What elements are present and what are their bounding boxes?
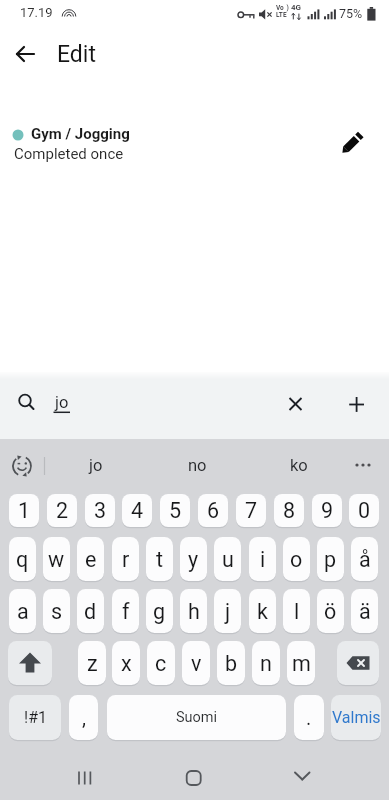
- button[interactable]: x: [112, 641, 140, 685]
- button[interactable]: .: [294, 695, 324, 740]
- button[interactable]: ko: [259, 439, 339, 491]
- button[interactable]: w: [43, 537, 70, 581]
- button[interactable]: m: [287, 641, 315, 685]
- staticText: w: [48, 547, 65, 572]
- button[interactable]: u: [214, 537, 241, 581]
- button[interactable]: 5: [160, 494, 190, 527]
- staticText: jo: [55, 393, 69, 412]
- staticText: i: [260, 547, 266, 572]
- button[interactable]: e: [77, 537, 104, 581]
- staticText: 5: [169, 498, 182, 523]
- staticText: LTE: [276, 11, 287, 19]
- button[interactable]: [0, 439, 44, 493]
- staticText: t: [156, 547, 164, 572]
- staticText: 2: [56, 498, 69, 523]
- staticText: Valmis: [332, 708, 381, 727]
- button[interactable]: a: [9, 589, 36, 633]
- button[interactable]: [9, 38, 43, 71]
- button[interactable]: å: [351, 537, 378, 581]
- staticText: z: [87, 651, 98, 676]
- staticText: ä: [359, 599, 371, 624]
- button[interactable]: 7: [236, 494, 266, 527]
- staticText: s: [51, 599, 63, 624]
- button[interactable]: y: [180, 537, 207, 581]
- staticText: v: [191, 651, 202, 676]
- button[interactable]: b: [217, 641, 245, 685]
- button[interactable]: 6: [198, 494, 228, 527]
- button[interactable]: 2: [47, 494, 77, 527]
- staticText: 3: [94, 498, 107, 523]
- button[interactable]: h: [180, 589, 207, 633]
- button[interactable]: t: [146, 537, 173, 581]
- staticText: y: [188, 547, 199, 572]
- staticText: d: [84, 599, 97, 624]
- button[interactable]: r: [112, 537, 139, 581]
- button[interactable]: f: [112, 589, 139, 633]
- button[interactable]: z: [78, 641, 106, 685]
- staticText: c: [155, 651, 167, 676]
- button[interactable]: no: [157, 439, 237, 491]
- staticText: u: [222, 547, 234, 572]
- button[interactable]: ,: [69, 695, 98, 740]
- staticText: k: [257, 599, 268, 624]
- button[interactable]: !#1: [9, 695, 61, 740]
- button[interactable]: [275, 384, 315, 424]
- button[interactable]: Suomi: [107, 695, 286, 740]
- button[interactable]: 3: [85, 494, 115, 527]
- button[interactable]: jo: [56, 439, 136, 491]
- staticText: Vo ): [276, 4, 289, 12]
- staticText: 17.19: [20, 5, 53, 20]
- button[interactable]: 8: [274, 494, 304, 527]
- staticText: o: [290, 547, 303, 572]
- staticText: 6: [207, 498, 220, 523]
- button[interactable]: o: [283, 537, 310, 581]
- staticText: .: [306, 706, 312, 729]
- staticText: Suomi: [176, 709, 218, 726]
- button[interactable]: Gym / Jogging: [0, 120, 389, 170]
- button[interactable]: k: [249, 589, 276, 633]
- staticText: m: [292, 651, 311, 676]
- button[interactable]: q: [9, 537, 36, 581]
- button[interactable]: [168, 756, 218, 800]
- staticText: x: [121, 651, 132, 676]
- staticText: ko: [290, 456, 308, 475]
- staticText: p: [324, 547, 337, 572]
- button[interactable]: j: [214, 589, 241, 633]
- button[interactable]: d: [77, 589, 104, 633]
- button[interactable]: p: [317, 537, 344, 581]
- button[interactable]: l: [283, 589, 310, 633]
- button[interactable]: [335, 123, 375, 163]
- button[interactable]: [337, 641, 379, 685]
- staticText: g: [153, 599, 166, 624]
- staticText: l: [294, 599, 300, 624]
- staticText: f: [122, 599, 130, 624]
- staticText: 1: [18, 498, 31, 523]
- button[interactable]: n: [252, 641, 280, 685]
- button[interactable]: [278, 756, 328, 800]
- button[interactable]: c: [147, 641, 175, 685]
- button[interactable]: i: [249, 537, 276, 581]
- button[interactable]: [8, 641, 52, 685]
- button[interactable]: 4: [122, 494, 152, 527]
- button[interactable]: 0: [349, 494, 379, 527]
- button[interactable]: 1: [9, 494, 39, 527]
- staticText: 4: [131, 498, 144, 523]
- button[interactable]: s: [43, 589, 70, 633]
- staticText: ö: [324, 599, 337, 624]
- button[interactable]: [337, 384, 377, 424]
- staticText: n: [260, 651, 272, 676]
- staticText: 9: [321, 498, 334, 523]
- button[interactable]: ö: [317, 589, 344, 633]
- button[interactable]: v: [182, 641, 210, 685]
- button[interactable]: 9: [312, 494, 342, 527]
- staticText: Gym / Jogging: [31, 125, 130, 143]
- staticText: 4G: [291, 3, 302, 12]
- staticText: no: [188, 456, 207, 475]
- button[interactable]: ä: [351, 589, 378, 633]
- button[interactable]: g: [146, 589, 173, 633]
- staticText: b: [225, 651, 238, 676]
- staticText: 75%: [339, 6, 363, 21]
- staticText: e: [85, 547, 97, 572]
- button[interactable]: [61, 756, 111, 800]
- button[interactable]: Valmis: [331, 695, 381, 740]
